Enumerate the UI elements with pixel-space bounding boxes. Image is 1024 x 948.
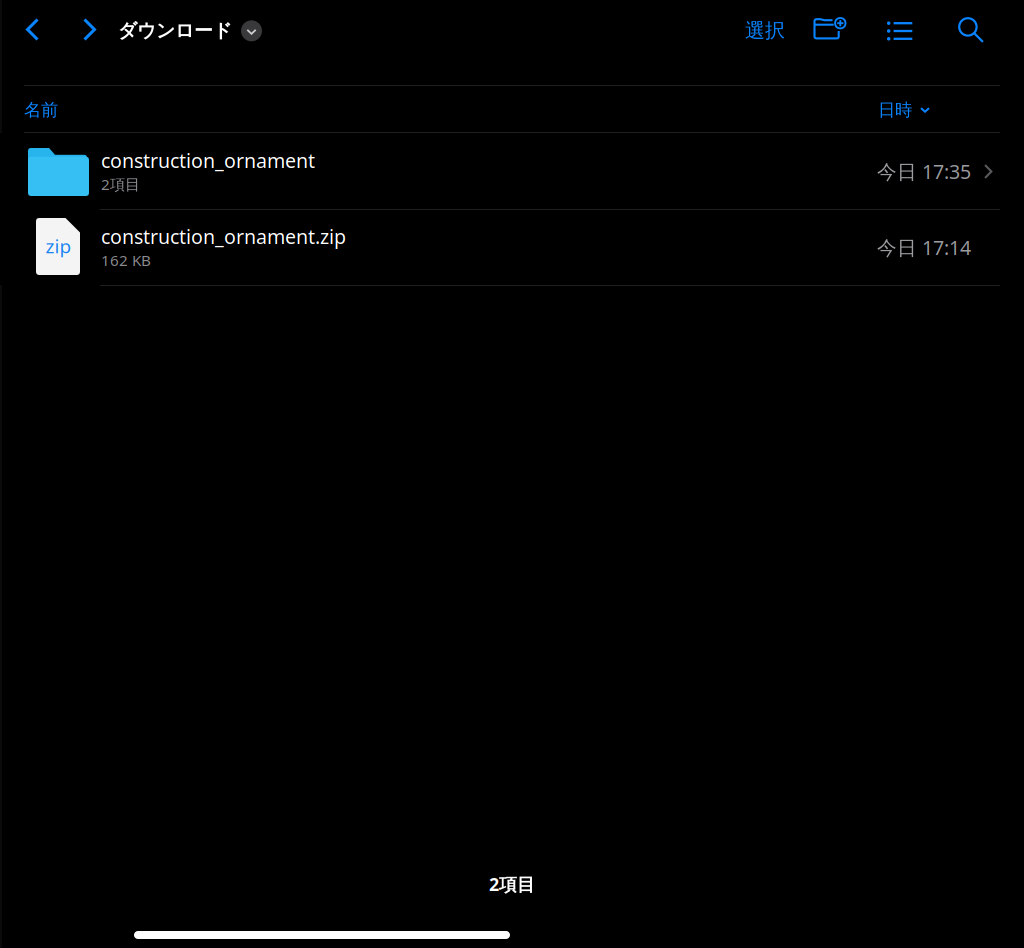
staticText: 今日 17:14 (877, 234, 971, 261)
staticText: ダウンロード (118, 19, 232, 43)
button[interactable]: Search (944, 5, 998, 55)
staticText: 162 KB (101, 250, 151, 270)
button[interactable]: construction_ornament (0, 133, 1024, 209)
button[interactable]: zip (0, 209, 1024, 285)
button[interactable]: ダウンロード (118, 7, 262, 55)
button[interactable]: Back (18, 7, 47, 52)
button[interactable]: View Options (873, 6, 927, 56)
staticText: construction_ornament.zip (101, 223, 346, 250)
staticText: 選択 (745, 18, 785, 43)
staticText: 今日 17:35 (877, 158, 971, 185)
staticText: construction_ornament (101, 147, 315, 174)
button[interactable]: 選択 (733, 7, 797, 54)
button[interactable]: Forward (75, 7, 104, 52)
staticText: 日時 (878, 99, 912, 121)
button[interactable]: New Folder (798, 5, 856, 53)
staticText: 2項目 (489, 872, 535, 896)
staticText: zip (45, 233, 71, 259)
button[interactable]: 日時 (874, 91, 934, 129)
button[interactable]: 名前 (24, 91, 70, 129)
staticText: 名前 (24, 99, 58, 121)
staticText: 2項目 (101, 174, 140, 194)
